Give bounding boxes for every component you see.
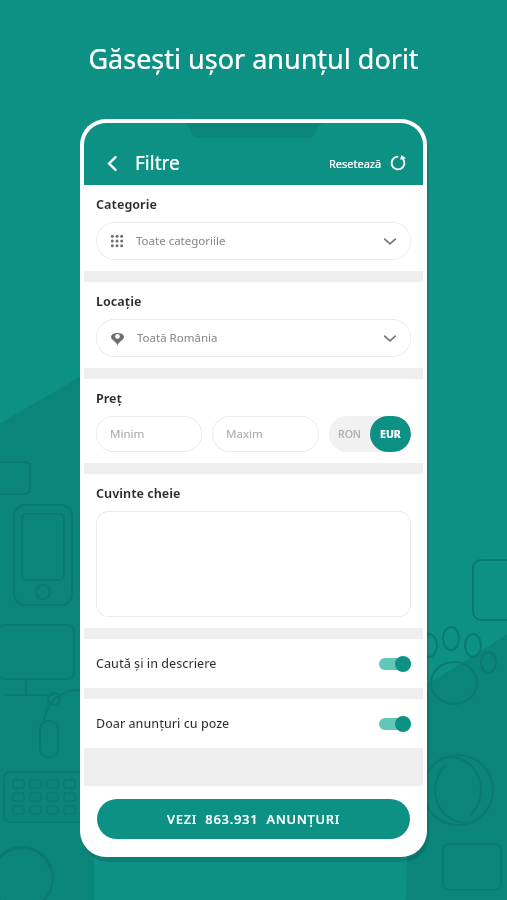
button[interactable]: Maxim	[212, 416, 319, 452]
staticText: Doar anunțuri cu poze	[96, 715, 230, 732]
staticText: Toată România	[137, 330, 218, 346]
staticText: VEZI 863.931 ANUNȚURI	[167, 810, 341, 828]
button[interactable]: RON	[329, 416, 370, 452]
button[interactable]	[96, 511, 411, 617]
staticText: Minim	[110, 426, 145, 442]
staticText: Preț	[96, 390, 122, 407]
staticText: Toate categoriile	[136, 233, 226, 249]
staticText: RON	[338, 427, 362, 441]
button[interactable]: VEZI 863.931 ANUNȚURI	[97, 799, 410, 839]
staticText: Cuvinte cheie	[96, 485, 181, 502]
staticText: Resetează	[329, 156, 382, 171]
staticText: Găsești ușor anunțul dorit	[12, 40, 495, 77]
button[interactable]: Toate categoriile	[96, 222, 411, 260]
staticText: Filtre	[135, 150, 180, 176]
button[interactable]: Caută și in descriere	[84, 639, 423, 688]
staticText: Categorie	[96, 196, 157, 213]
button[interactable]: Resetează	[325, 151, 410, 175]
staticText: Locație	[96, 293, 142, 310]
button[interactable]: Back	[95, 146, 129, 180]
button[interactable]: EUR	[370, 416, 411, 452]
button[interactable]: Minim	[96, 416, 202, 452]
staticText: Maxim	[226, 426, 263, 442]
button[interactable]: Toată România	[96, 319, 411, 357]
staticText: EUR	[380, 427, 401, 441]
staticText: Caută și in descriere	[96, 655, 217, 672]
button[interactable]: Doar anunțuri cu poze	[84, 699, 423, 748]
